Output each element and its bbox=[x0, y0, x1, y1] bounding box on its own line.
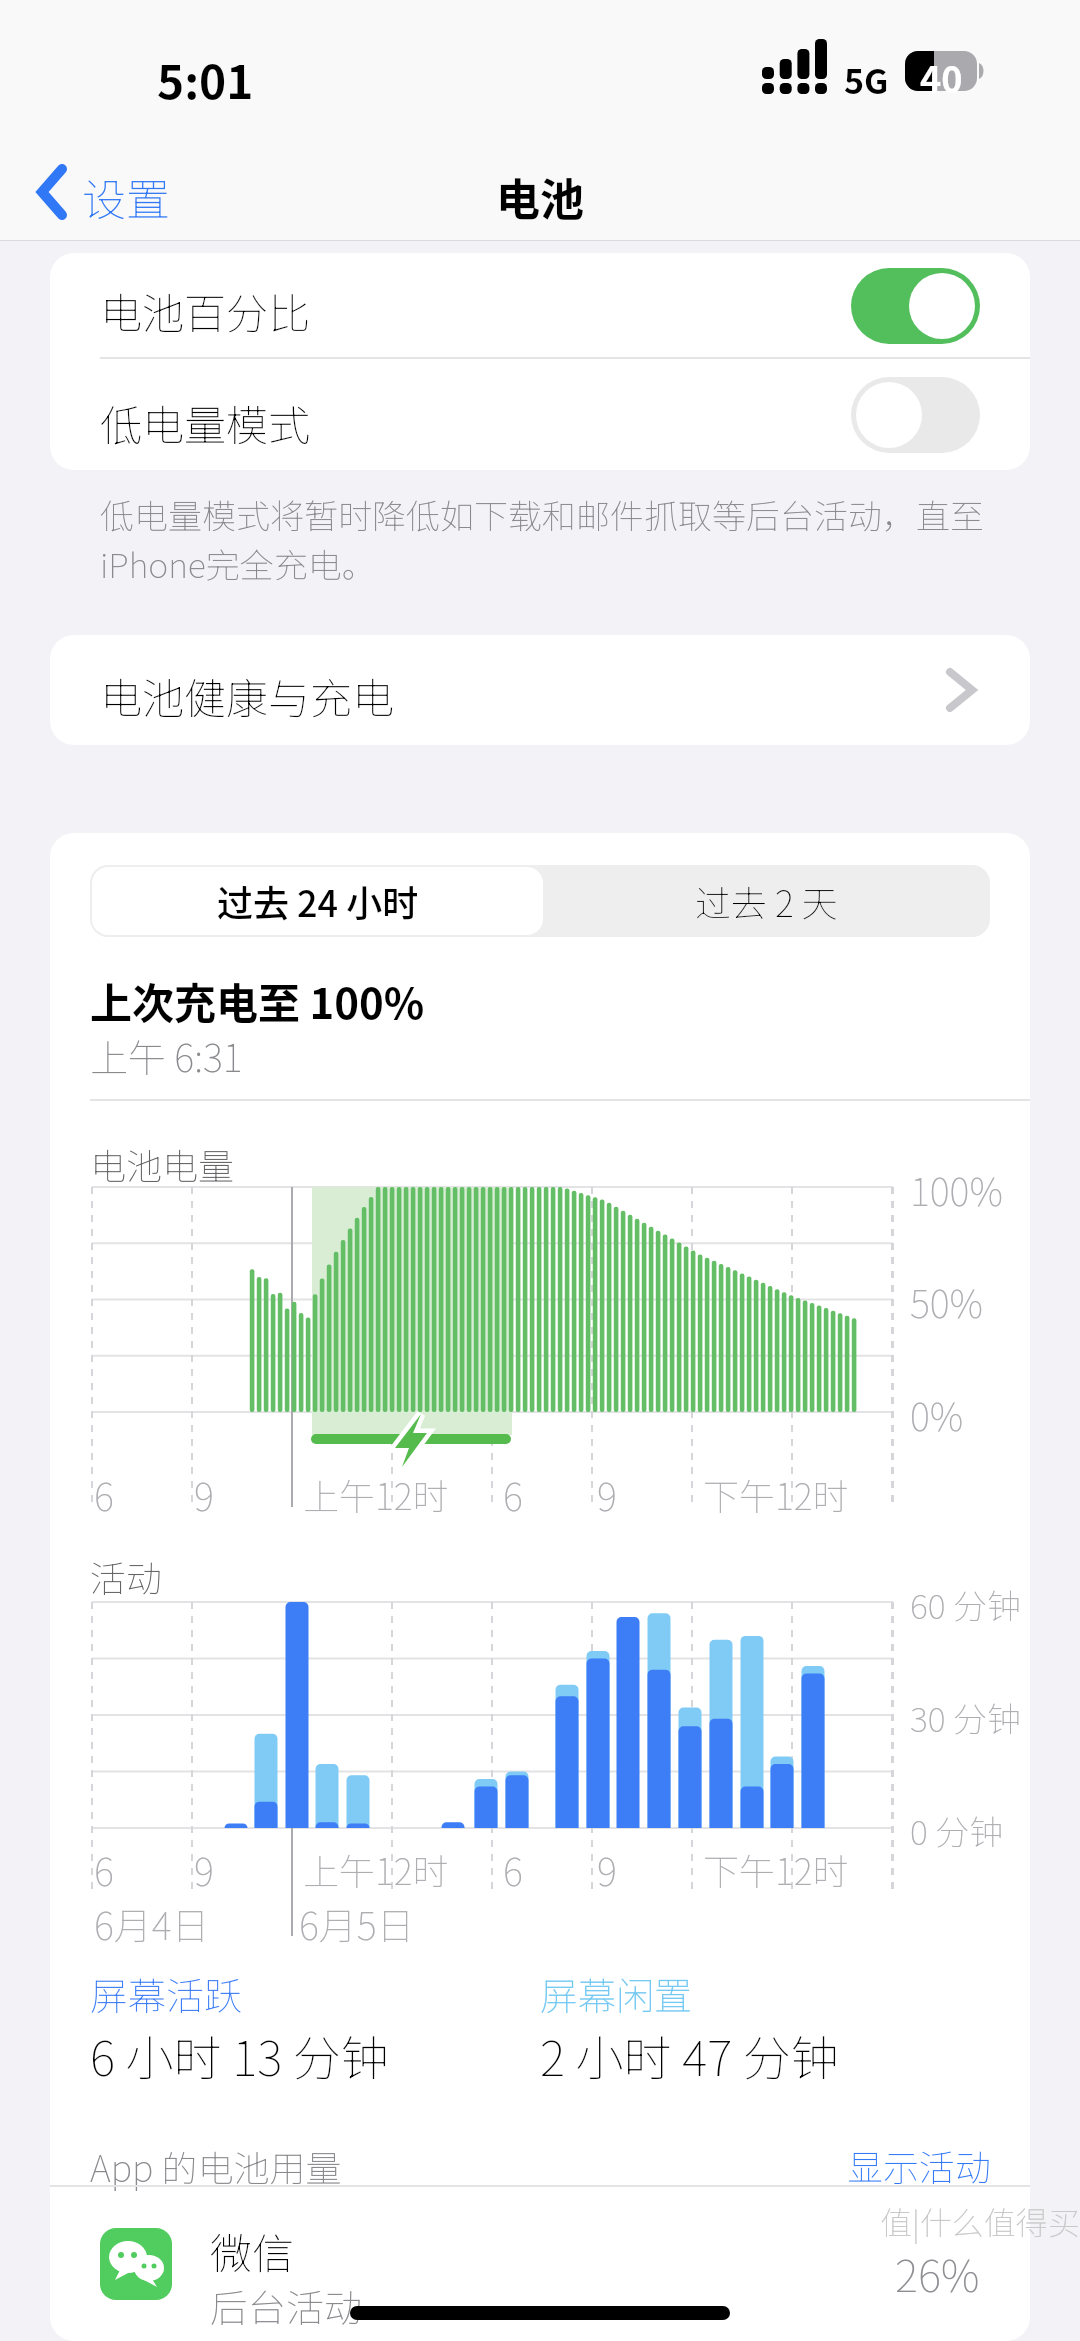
staticText: 下午12时 bbox=[703, 1843, 849, 1895]
staticText: 低电量模式 bbox=[100, 392, 311, 453]
staticText: 微信 bbox=[210, 2220, 295, 2281]
staticText: 0% bbox=[910, 1387, 964, 1442]
staticText: 6月4日 bbox=[94, 1896, 210, 1951]
staticText: 6 bbox=[94, 1467, 114, 1522]
staticText: 上午 6:31 bbox=[90, 1028, 243, 1083]
staticText: 低电量模式将暂时降低如下载和邮件抓取等后台活动，直至iPhone完全充电。 bbox=[100, 490, 1000, 588]
staticText: 100% bbox=[910, 1162, 1003, 1217]
staticText: 电池健康与充电 bbox=[100, 665, 395, 726]
staticText: 60 分钟 bbox=[910, 1580, 1021, 1629]
button[interactable]: 电池健康与充电 bbox=[50, 635, 1030, 745]
button[interactable]: 设置 bbox=[82, 165, 170, 229]
button[interactable]: 低电量模式 bbox=[50, 359, 1030, 470]
button[interactable] bbox=[851, 377, 980, 453]
button[interactable]: 过去 24 小时 bbox=[92, 867, 543, 935]
staticText: 电池 bbox=[496, 165, 584, 229]
staticText: 后台活动 bbox=[210, 2278, 363, 2333]
staticText: 5G bbox=[844, 55, 889, 104]
staticText: 9 bbox=[597, 1842, 617, 1897]
staticText: 40 bbox=[920, 51, 963, 103]
button[interactable] bbox=[851, 268, 980, 344]
button[interactable]: 电池百分比 bbox=[50, 253, 1030, 358]
staticText: 26% bbox=[895, 2241, 980, 2305]
button[interactable]: 过去 2 天 bbox=[543, 867, 990, 935]
staticText: 2 小时 47 分钟 bbox=[540, 2020, 839, 2090]
button[interactable] bbox=[38, 166, 66, 218]
staticText: 50% bbox=[910, 1274, 984, 1329]
button[interactable]: 微信 bbox=[50, 2186, 1030, 2341]
staticText: 9 bbox=[194, 1842, 214, 1897]
staticText: 屏幕活跃 bbox=[90, 1966, 243, 2021]
staticText: 屏幕闲置 bbox=[540, 1966, 693, 2021]
staticText: 值|什么值得买 bbox=[880, 2198, 1080, 2244]
staticText: 0 分钟 bbox=[910, 1806, 1004, 1855]
staticText: 5:01 bbox=[157, 46, 254, 113]
staticText: 下午12时 bbox=[703, 1468, 849, 1520]
staticText: 30 分钟 bbox=[910, 1693, 1021, 1742]
button[interactable]: 显示活动 bbox=[847, 2139, 992, 2191]
staticText: 上午12时 bbox=[303, 1468, 449, 1520]
staticText: 6 bbox=[503, 1842, 523, 1897]
staticText: 9 bbox=[597, 1467, 617, 1522]
staticText: 6月5日 bbox=[299, 1896, 415, 1951]
staticText: 过去 2 天 bbox=[695, 875, 838, 927]
staticText: 6 小时 13 分钟 bbox=[90, 2020, 389, 2090]
staticText: 上午12时 bbox=[303, 1843, 449, 1895]
staticText: 6 bbox=[94, 1842, 114, 1897]
staticText: 电池百分比 bbox=[100, 280, 311, 341]
staticText: 上次充电至 100% bbox=[90, 970, 425, 1031]
staticText: 9 bbox=[194, 1467, 214, 1522]
staticText: 电池电量 bbox=[90, 1138, 235, 1190]
staticText: 过去 24 小时 bbox=[217, 875, 419, 927]
staticText: 活动 bbox=[90, 1550, 163, 1602]
staticText: 6 bbox=[503, 1467, 523, 1522]
staticText: App 的电池用量 bbox=[90, 2140, 342, 2192]
